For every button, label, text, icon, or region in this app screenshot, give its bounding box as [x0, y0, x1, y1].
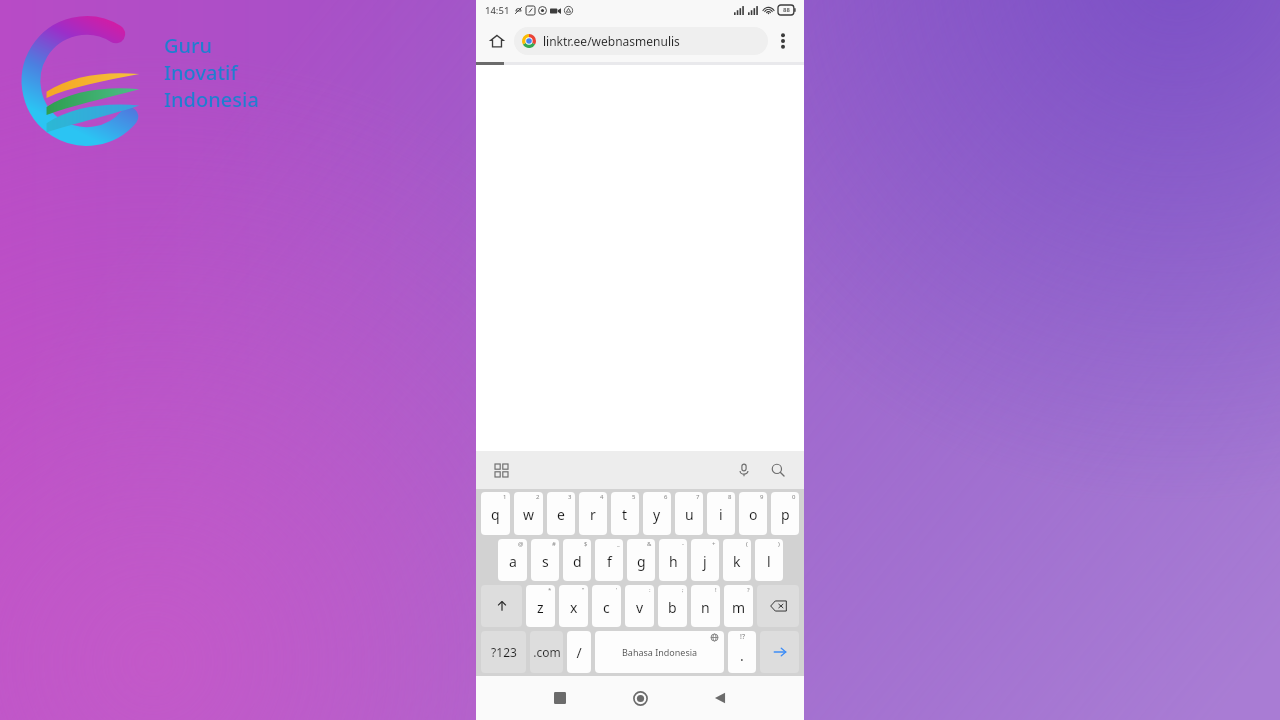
- button[interactable]: .com: [530, 631, 563, 673]
- staticText: h: [669, 552, 678, 571]
- staticText: j: [703, 552, 707, 571]
- button[interactable]: 7: [675, 492, 703, 535]
- staticText: :: [649, 586, 651, 594]
- button[interactable]: *: [526, 585, 555, 627]
- staticText: 7: [696, 493, 700, 501]
- button[interactable]: Recent apps: [520, 676, 600, 720]
- staticText: ": [582, 586, 585, 594]
- staticText: 8: [728, 493, 732, 501]
- staticText: 9: [760, 493, 764, 501]
- staticText: 0: [792, 493, 796, 501]
- button[interactable]: -: [659, 539, 687, 581]
- button[interactable]: ;: [658, 585, 687, 627]
- staticText: t: [622, 505, 628, 524]
- staticText: g: [637, 552, 646, 571]
- button[interactable]: !: [691, 585, 720, 627]
- staticText: 5: [632, 493, 636, 501]
- staticText: _: [617, 540, 620, 548]
- staticText: z: [537, 598, 544, 617]
- button[interactable]: Home: [484, 28, 510, 54]
- button[interactable]: Bahasa Indonesia: [595, 631, 724, 673]
- button[interactable]: @: [498, 539, 527, 581]
- staticText: @: [518, 540, 524, 548]
- staticText: Inovatif: [164, 59, 238, 86]
- staticText: x: [570, 598, 578, 617]
- staticText: Guru: [164, 32, 213, 59]
- staticText: q: [491, 505, 500, 524]
- button[interactable]: linktr.ee/webnasmenulis: [514, 27, 768, 55]
- staticText: ?123: [491, 644, 517, 660]
- button[interactable]: _: [595, 539, 623, 581]
- button[interactable]: Shift: [481, 585, 522, 627]
- staticText: f: [607, 552, 612, 571]
- staticText: o: [749, 505, 758, 524]
- staticText: /: [576, 643, 582, 662]
- staticText: p: [781, 505, 790, 524]
- button[interactable]: 2: [514, 492, 543, 535]
- button[interactable]: Keyboard menu: [490, 459, 512, 481]
- button[interactable]: Search: [766, 458, 790, 482]
- button[interactable]: Home: [600, 676, 680, 720]
- button[interactable]: 8: [707, 492, 735, 535]
- staticText: .com: [533, 644, 561, 660]
- button[interactable]: !?: [728, 631, 756, 673]
- staticText: Bahasa Indonesia: [622, 646, 698, 658]
- staticText: a: [509, 552, 517, 571]
- staticText: b: [668, 598, 677, 617]
- staticText: y: [653, 505, 661, 524]
- button[interactable]: Voice input: [732, 458, 756, 482]
- button[interactable]: #: [531, 539, 559, 581]
- button[interactable]: 0: [771, 492, 799, 535]
- button[interactable]: 5: [611, 492, 639, 535]
- staticText: m: [732, 598, 746, 617]
- staticText: ?: [747, 586, 750, 594]
- staticText: r: [590, 505, 596, 524]
- button[interactable]: ): [755, 539, 783, 581]
- button[interactable]: 1: [481, 492, 510, 535]
- staticText: i: [719, 505, 723, 524]
- staticText: d: [573, 552, 582, 571]
- button[interactable]: More options: [770, 28, 796, 54]
- staticText: 14:51: [485, 4, 510, 17]
- staticText: k: [733, 552, 741, 571]
- button[interactable]: /: [567, 631, 591, 673]
- button[interactable]: ": [559, 585, 588, 627]
- staticText: 4: [600, 493, 604, 501]
- button[interactable]: &: [627, 539, 655, 581]
- button[interactable]: Backspace: [757, 585, 799, 627]
- button[interactable]: +: [691, 539, 719, 581]
- staticText: 2: [536, 493, 540, 501]
- button[interactable]: 4: [579, 492, 607, 535]
- staticText: .: [740, 646, 744, 665]
- staticText: 1: [503, 493, 507, 501]
- staticText: c: [603, 598, 610, 617]
- button[interactable]: 3: [547, 492, 575, 535]
- button[interactable]: ?123: [481, 631, 526, 673]
- staticText: ': [616, 586, 618, 594]
- staticText: +: [712, 540, 716, 548]
- button[interactable]: ?: [724, 585, 753, 627]
- staticText: -: [682, 540, 684, 548]
- staticText: n: [701, 598, 710, 617]
- button[interactable]: $: [563, 539, 591, 581]
- staticText: u: [685, 505, 694, 524]
- button[interactable]: :: [625, 585, 654, 627]
- staticText: 88: [783, 6, 790, 14]
- staticText: *: [548, 586, 552, 594]
- staticText: l: [767, 552, 771, 571]
- staticText: Indonesia: [164, 86, 259, 113]
- staticText: ): [778, 540, 780, 548]
- staticText: e: [557, 505, 565, 524]
- button[interactable]: 9: [739, 492, 767, 535]
- button[interactable]: (: [723, 539, 751, 581]
- staticText: !?: [740, 632, 745, 642]
- staticText: ;: [682, 586, 684, 594]
- button[interactable]: 6: [643, 492, 671, 535]
- staticText: (: [746, 540, 748, 548]
- staticText: #: [552, 540, 556, 548]
- button[interactable]: Back: [680, 676, 760, 720]
- button[interactable]: Go: [760, 631, 799, 673]
- staticText: 6: [664, 493, 668, 501]
- staticText: s: [542, 552, 549, 571]
- button[interactable]: ': [592, 585, 621, 627]
